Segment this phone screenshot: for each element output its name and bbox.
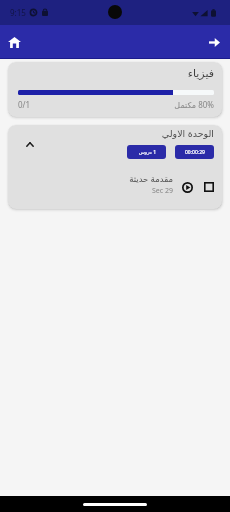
staticText: فيزياء — [18, 67, 214, 80]
staticText: مقدمة حديثة — [129, 173, 173, 185]
button[interactable]: مقدمة حديثة — [18, 169, 214, 195]
button[interactable]: Home — [0, 25, 28, 59]
button[interactable]: فيزياء — [8, 62, 222, 117]
button[interactable]: Play — [182, 182, 193, 193]
button[interactable]: 1 دروس — [127, 145, 166, 159]
staticText: الوحدة الاولي — [161, 127, 214, 140]
staticText: 00:00:29 — [185, 149, 205, 156]
button[interactable]: Back — [199, 25, 230, 59]
button[interactable]: Select lesson — [204, 182, 214, 192]
staticText: 9:15 — [10, 7, 26, 18]
staticText: 80% مكتمل — [174, 99, 214, 110]
staticText: 1 دروس — [138, 149, 156, 156]
button[interactable]: 00:00:29 — [175, 145, 214, 159]
staticText: Sec 29 — [152, 186, 173, 195]
staticText: 0/1 — [18, 99, 31, 110]
button[interactable]: الوحدة الاولي — [18, 127, 214, 159]
